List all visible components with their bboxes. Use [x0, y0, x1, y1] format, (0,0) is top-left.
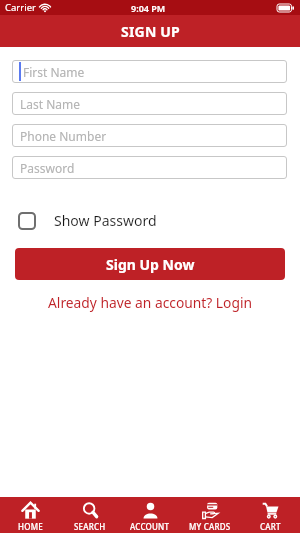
button[interactable]: CART [240, 497, 300, 533]
button[interactable]: HOME [0, 497, 60, 533]
button[interactable]: SEARCH [60, 497, 120, 533]
staticText: Show Password [54, 211, 157, 230]
staticText: Carrier [5, 1, 36, 14]
button[interactable]: Phone Number [12, 124, 287, 147]
staticText: First Name [23, 64, 85, 80]
staticText: Password [20, 160, 75, 176]
staticText: MY CARDS [189, 521, 231, 532]
button[interactable]: Already have an account? Login [0, 293, 300, 312]
button[interactable]: Show Password [18, 211, 157, 230]
staticText: 9:04 PM [131, 2, 166, 14]
staticText: SIGN UP [121, 22, 180, 41]
button[interactable]: ACCOUNT [120, 497, 180, 533]
staticText: Phone Number [20, 128, 107, 144]
staticText: HOME [18, 521, 43, 532]
staticText: SEARCH [74, 521, 106, 532]
button[interactable]: Sign Up Now [15, 248, 285, 280]
staticText: CART [260, 521, 281, 532]
button[interactable]: Last Name [12, 92, 287, 115]
staticText: Last Name [20, 96, 81, 112]
staticText: Already have an account? Login [48, 293, 253, 312]
button[interactable]: First Name [12, 60, 287, 83]
staticText: Sign Up Now [106, 255, 195, 274]
staticText: ACCOUNT [130, 521, 170, 532]
button[interactable]: Password [12, 156, 287, 179]
button[interactable]: MY CARDS [180, 497, 240, 533]
